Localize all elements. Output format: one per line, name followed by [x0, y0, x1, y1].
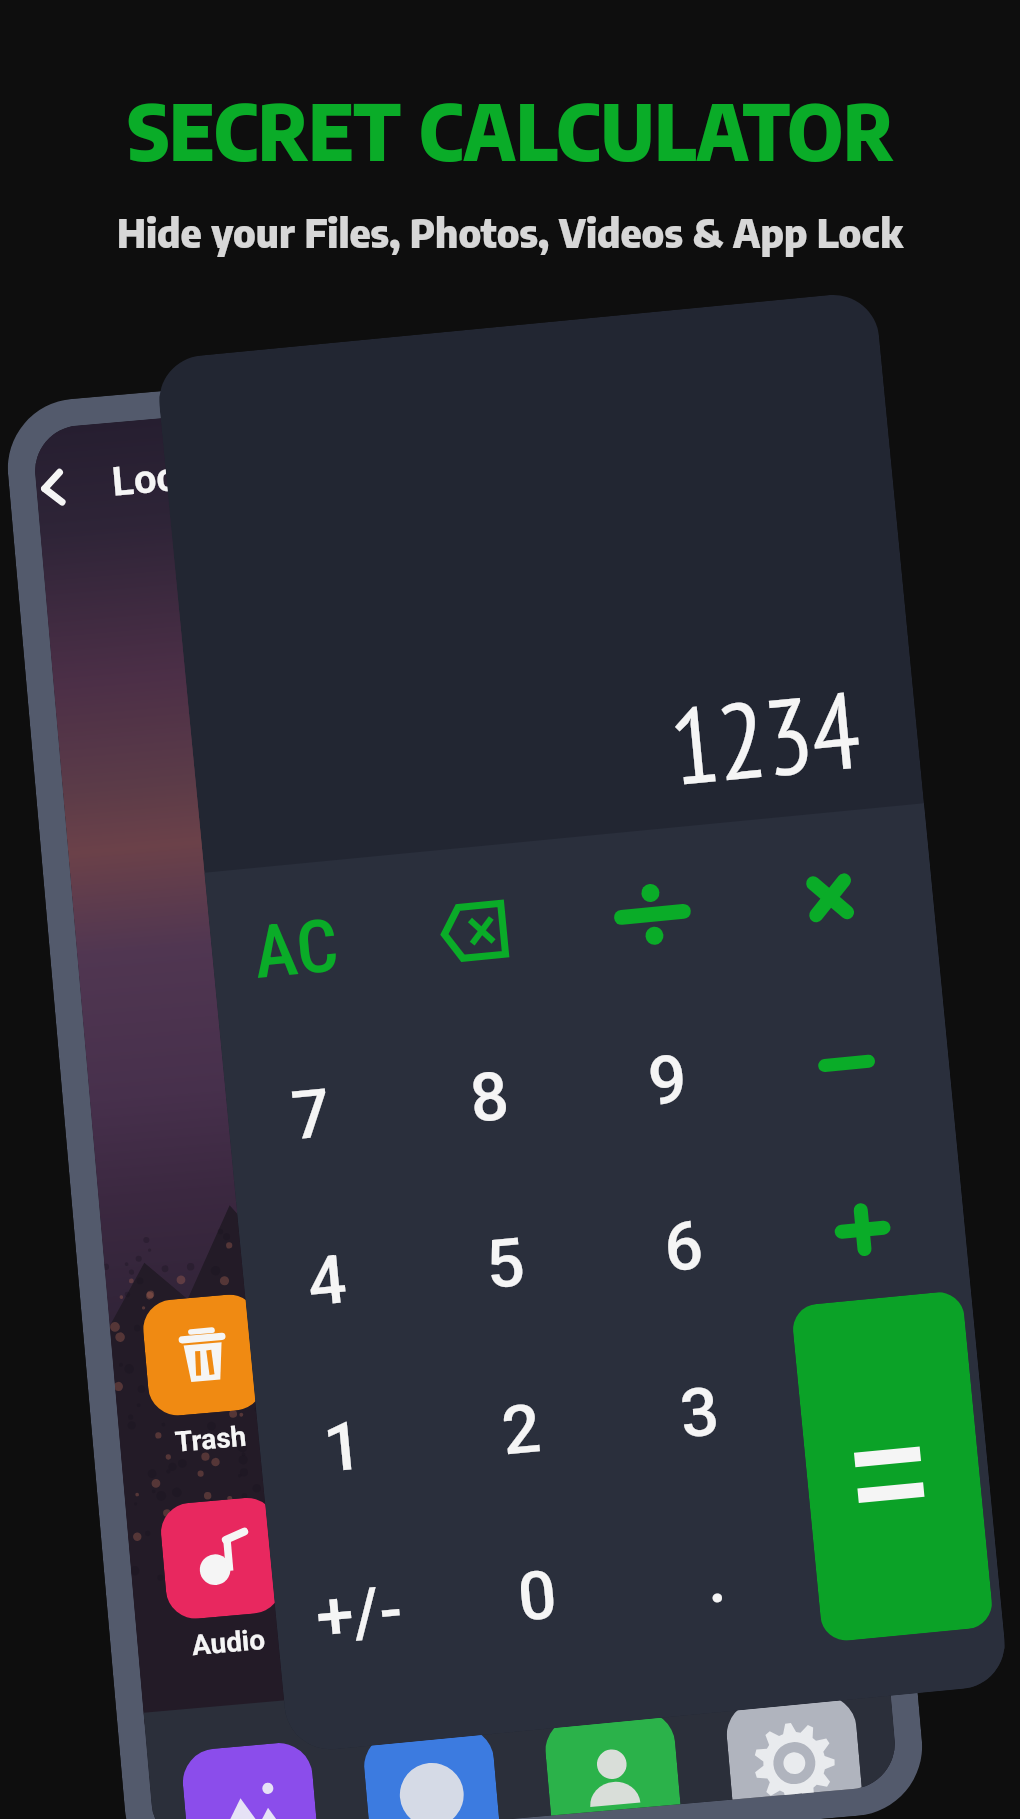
staticText: 0	[515, 1555, 561, 1638]
button[interactable]: Multiply	[733, 806, 927, 989]
staticText: Audio	[190, 1623, 267, 1662]
staticText: 5	[483, 1223, 529, 1305]
button[interactable]: Equals	[791, 1290, 994, 1643]
staticText: 1	[320, 1406, 367, 1489]
button[interactable]: 8	[393, 1006, 587, 1189]
button[interactable]: 0	[441, 1505, 635, 1688]
button[interactable]: Contacts	[543, 1709, 681, 1816]
button[interactable]: Divide	[555, 823, 749, 1006]
button[interactable]: 3	[603, 1321, 797, 1505]
staticText: Hide your Files, Photos, Videos & App Lo…	[117, 207, 903, 257]
staticText: +/-	[312, 1570, 407, 1657]
button[interactable]: Audio	[158, 1495, 288, 1664]
button[interactable]: +/-	[268, 1522, 457, 1705]
staticText: 3	[677, 1372, 723, 1454]
button[interactable]: 4	[236, 1189, 425, 1372]
staticText: 2	[499, 1389, 545, 1471]
button[interactable]: 7	[220, 1023, 409, 1206]
staticText: Lock Screen	[110, 439, 335, 506]
staticText: 7	[288, 1074, 335, 1156]
button[interactable]: Minus	[749, 972, 943, 1155]
staticText: Trash	[174, 1420, 248, 1459]
button[interactable]: Back	[35, 464, 76, 511]
button[interactable]: Settings	[724, 1693, 862, 1800]
button[interactable]: .	[619, 1488, 813, 1671]
button[interactable]: Plus	[765, 1138, 959, 1321]
staticText: AC	[250, 902, 342, 996]
button[interactable]: Gallery	[180, 1740, 318, 1819]
button[interactable]: 9	[571, 989, 765, 1172]
button[interactable]: Trash	[141, 1292, 270, 1461]
staticText: SECRET CALCULATOR	[127, 83, 894, 178]
button[interactable]: 2	[425, 1339, 619, 1522]
button[interactable]: 6	[587, 1155, 781, 1339]
staticText: 4	[304, 1240, 351, 1322]
staticText: 9	[645, 1039, 691, 1122]
staticText: .	[703, 1539, 729, 1620]
staticText: 6	[661, 1206, 707, 1288]
button[interactable]: AC	[204, 857, 393, 1040]
button[interactable]: Browser	[361, 1724, 499, 1819]
staticText: 1234	[664, 659, 865, 814]
staticText: 8	[467, 1057, 513, 1139]
button[interactable]: 5	[409, 1172, 603, 1356]
button[interactable]: Delete	[377, 840, 571, 1023]
button[interactable]: 1	[252, 1356, 441, 1538]
